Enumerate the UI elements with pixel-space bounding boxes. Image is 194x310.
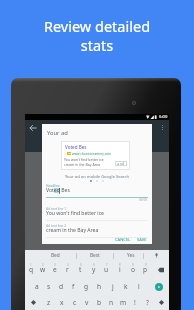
button[interactable]: 0 xyxy=(139,261,152,278)
button[interactable]: s xyxy=(43,278,55,295)
staticText: v xyxy=(85,298,89,307)
staticText: Ad text line 1 xyxy=(46,206,67,210)
button[interactable]: n xyxy=(105,295,117,310)
staticText: c xyxy=(73,298,77,307)
button[interactable]: CANCEL xyxy=(112,236,134,244)
staticText: www.choicecreamery.com xyxy=(72,152,112,156)
staticText: CANCEL xyxy=(115,237,131,243)
button[interactable]: Best xyxy=(77,250,113,261)
staticText: l xyxy=(138,282,140,291)
button[interactable]: f xyxy=(67,278,80,295)
staticText: w xyxy=(40,265,46,274)
staticText: b xyxy=(97,298,102,307)
button[interactable]: j xyxy=(106,278,119,295)
staticText: z xyxy=(47,298,51,307)
staticText: h xyxy=(97,282,102,291)
staticText: ? xyxy=(146,298,149,307)
button[interactable]: Call xyxy=(115,161,127,166)
staticText: call xyxy=(120,162,125,166)
button[interactable]: Ad text line 2 xyxy=(46,224,148,240)
staticText: Bed xyxy=(51,252,60,259)
staticText: k xyxy=(124,282,128,291)
button[interactable]: 7 xyxy=(100,261,113,278)
staticText: Review detailed stats xyxy=(34,16,160,55)
staticText: y xyxy=(92,265,96,274)
button[interactable]: 5 xyxy=(74,261,87,278)
button[interactable]: Ad text line 1 xyxy=(46,207,148,223)
staticText: Your ad xyxy=(47,129,68,137)
staticText: 0 xyxy=(145,263,147,267)
button[interactable]: ? xyxy=(141,295,153,310)
staticText: Headline xyxy=(46,183,60,187)
button[interactable]: d xyxy=(55,278,67,295)
button[interactable]: x xyxy=(55,295,68,310)
button[interactable]: v xyxy=(81,295,93,310)
staticText: t xyxy=(79,265,82,274)
staticText: 6 xyxy=(93,263,95,267)
staticText: 3 xyxy=(54,263,56,267)
staticText: 4 xyxy=(67,263,69,267)
staticText: s xyxy=(47,282,51,291)
button[interactable]: Yes xyxy=(114,250,143,261)
staticText: 09/25 xyxy=(139,198,148,202)
button[interactable]: 2 xyxy=(37,261,49,278)
button[interactable]: ! xyxy=(129,295,141,310)
staticText: e xyxy=(53,265,57,274)
button[interactable]: Back xyxy=(26,121,40,135)
button[interactable]: h xyxy=(93,278,106,295)
staticText: u xyxy=(104,265,109,274)
button[interactable]: l xyxy=(132,278,145,295)
staticText: 9 xyxy=(132,263,134,267)
staticText: i xyxy=(119,265,121,274)
button[interactable]: 6 xyxy=(87,261,100,278)
button[interactable]: m xyxy=(117,295,129,310)
staticText: cream in the Bay Area xyxy=(46,227,99,234)
staticText: x xyxy=(60,298,64,307)
staticText: g xyxy=(84,282,89,291)
button[interactable]: 1 xyxy=(25,261,37,278)
staticText: You won't find better ice xyxy=(46,210,104,217)
staticText: Voted Bes xyxy=(46,187,70,194)
staticText: d xyxy=(59,282,64,291)
button[interactable]: Emoji xyxy=(153,295,169,310)
staticText: r xyxy=(66,265,69,274)
staticText: Your ad on mobile Google Search xyxy=(65,174,129,180)
button[interactable]: Voice input xyxy=(144,250,169,261)
staticText: Yes xyxy=(127,252,135,259)
staticText: You won't find better ice cream in the B… xyxy=(64,157,104,167)
staticText: f xyxy=(72,282,75,291)
button[interactable]: Bed xyxy=(25,250,76,261)
button[interactable]: SAVE xyxy=(134,236,150,244)
staticText: m xyxy=(120,298,127,307)
button[interactable]: c xyxy=(68,295,81,310)
button[interactable]: 4 xyxy=(61,261,74,278)
button[interactable]: z xyxy=(42,295,55,310)
button[interactable]: a xyxy=(31,278,43,295)
button[interactable]: Backspace xyxy=(152,261,169,278)
button[interactable]: k xyxy=(119,278,132,295)
staticText: 8 xyxy=(119,263,121,267)
staticText: Ad xyxy=(68,152,71,155)
button[interactable]: Headline xyxy=(46,184,148,200)
button[interactable]: More options xyxy=(156,121,168,133)
staticText: o xyxy=(131,265,135,274)
staticText: Voted Bes xyxy=(65,144,87,150)
button[interactable]: 8 xyxy=(113,261,126,278)
staticText: 5 xyxy=(80,263,82,267)
staticText: Best xyxy=(90,252,100,259)
button[interactable]: g xyxy=(80,278,93,295)
staticText: a xyxy=(35,282,39,291)
staticText: 2 xyxy=(42,263,44,267)
button[interactable]: b xyxy=(93,295,105,310)
staticText: q xyxy=(29,265,34,274)
staticText: j xyxy=(112,282,114,291)
staticText: SAVE xyxy=(137,237,147,243)
button[interactable]: Shift xyxy=(25,295,42,310)
button[interactable]: Enter xyxy=(145,278,169,295)
staticText: ! xyxy=(134,298,136,307)
staticText: 6:00 xyxy=(159,114,168,120)
button[interactable]: 9 xyxy=(126,261,139,278)
button[interactable]: 3 xyxy=(49,261,61,278)
staticText: n xyxy=(109,298,114,307)
staticText: p xyxy=(143,265,148,274)
